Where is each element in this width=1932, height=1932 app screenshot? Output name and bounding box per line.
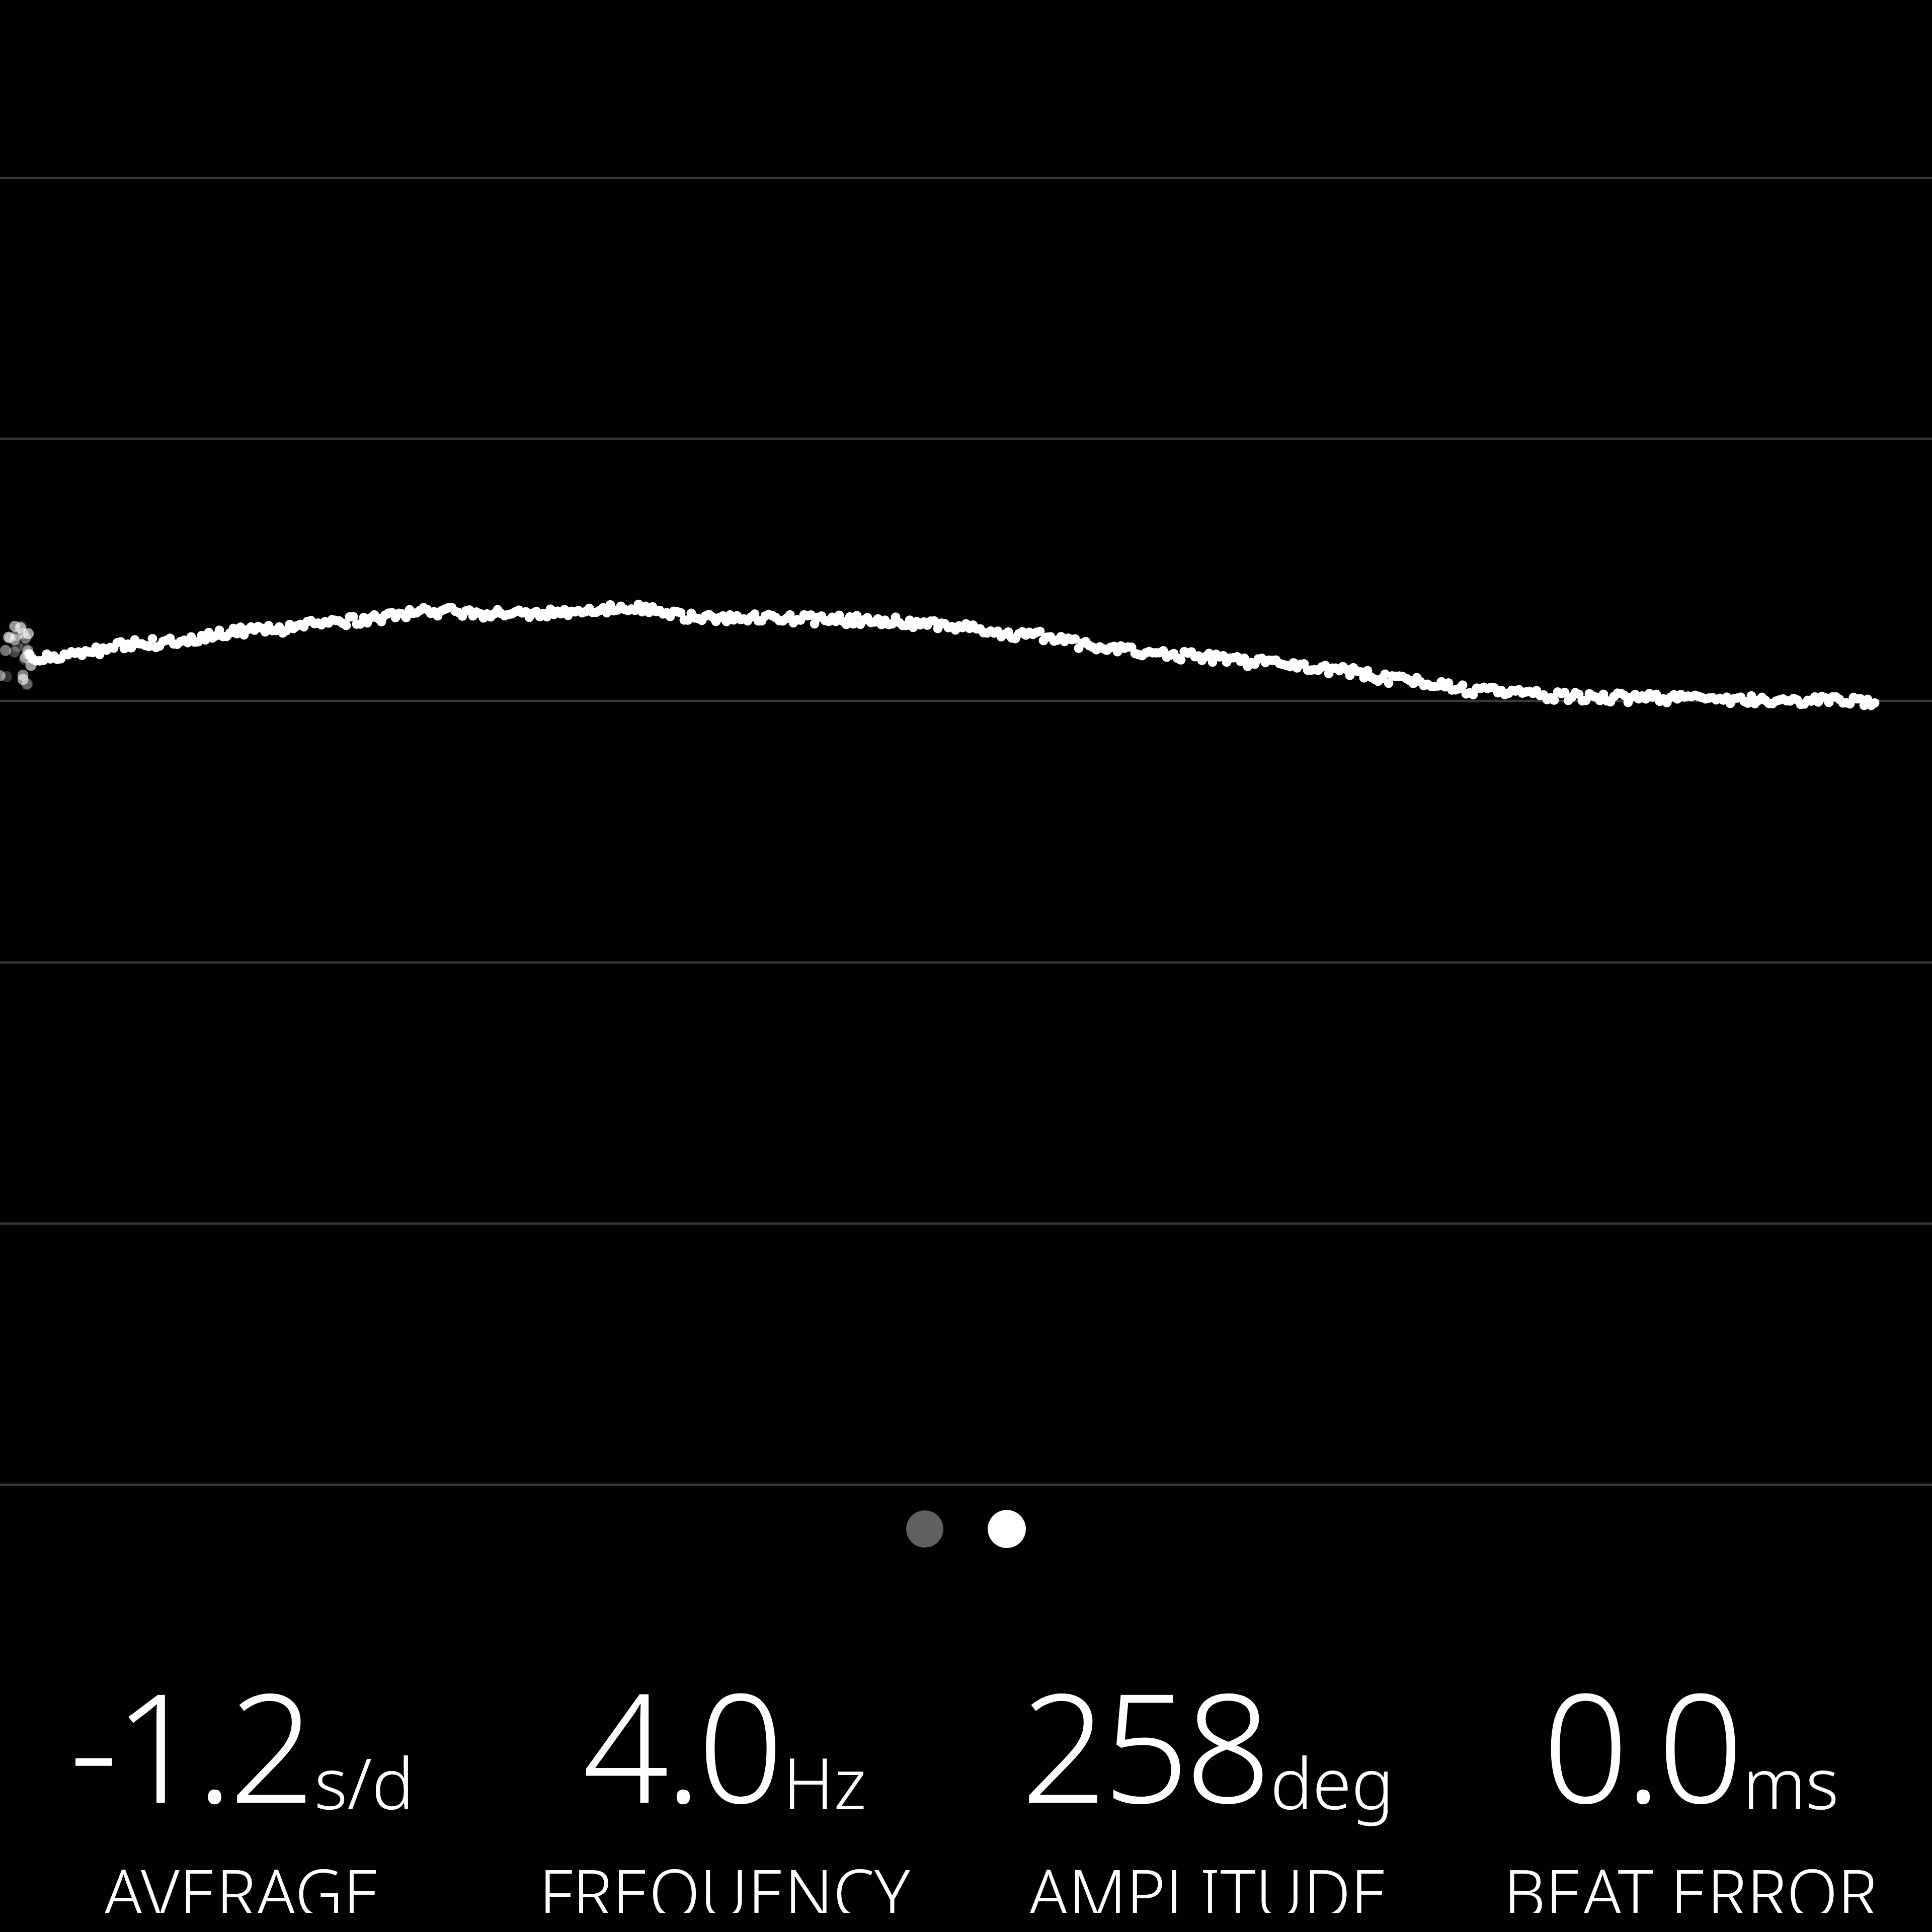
staticText: 0.0 <box>1543 1641 1740 1847</box>
staticText: deg <box>1270 1734 1394 1830</box>
button[interactable]: Page 1 <box>906 1510 943 1548</box>
button[interactable]: 4.0 <box>483 1641 966 1913</box>
button[interactable]: 258 <box>966 1641 1449 1913</box>
staticText: ms <box>1743 1734 1839 1830</box>
staticText: s/d <box>314 1734 414 1830</box>
button[interactable]: 0.0 <box>1449 1641 1932 1913</box>
staticText: -1.2 <box>69 1641 311 1847</box>
staticText: 258 <box>1021 1641 1267 1847</box>
staticText: 4.0 <box>583 1641 780 1847</box>
staticText: AVERAGE <box>103 1847 380 1913</box>
staticText: AMPLITUDE <box>1028 1847 1388 1913</box>
button[interactable]: Page 2 <box>988 1510 1026 1548</box>
staticText: BEAT ERROR <box>1503 1847 1878 1913</box>
button[interactable]: -1.2 <box>0 1641 483 1913</box>
staticText: Hz <box>783 1734 867 1830</box>
staticText: FREQUENCY <box>539 1847 910 1913</box>
